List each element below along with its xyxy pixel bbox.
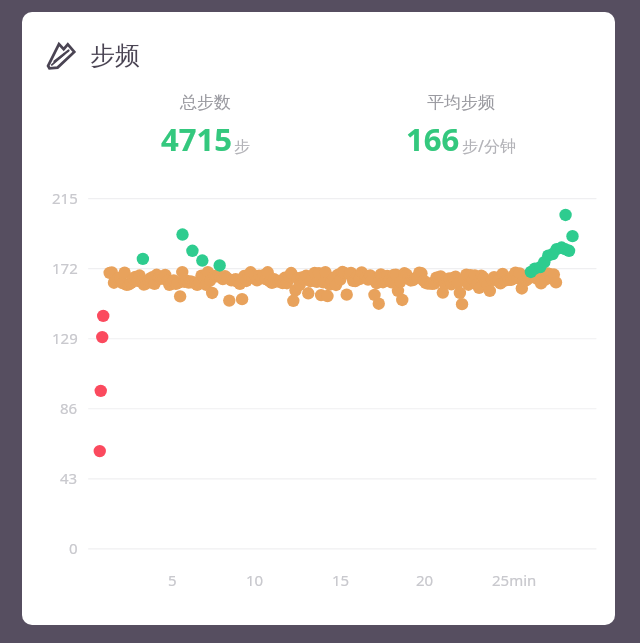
- staticText: 129: [52, 328, 78, 348]
- staticText: 25min: [492, 570, 537, 590]
- staticText: 步: [234, 137, 250, 157]
- staticText: 步频: [90, 40, 140, 71]
- staticText: 15: [332, 570, 350, 590]
- staticText: 平均步频: [427, 92, 495, 113]
- staticText: 4715: [161, 118, 232, 160]
- staticText: 215: [52, 188, 78, 208]
- staticText: 166: [406, 118, 460, 160]
- button[interactable]: Cadence: [44, 38, 140, 72]
- staticText: 43: [60, 468, 78, 488]
- staticText: 0: [69, 538, 78, 558]
- staticText: 10: [246, 570, 264, 590]
- staticText: 172: [52, 258, 78, 278]
- staticText: 步/分钟: [462, 135, 516, 157]
- staticText: 5: [168, 570, 177, 590]
- staticText: 20: [416, 570, 434, 590]
- other: Cadence: [44, 38, 78, 72]
- staticText: 总步数: [180, 92, 231, 113]
- button[interactable]: 总步数: [78, 92, 333, 160]
- staticText: 86: [60, 398, 78, 418]
- button[interactable]: 平均步频: [333, 92, 589, 160]
